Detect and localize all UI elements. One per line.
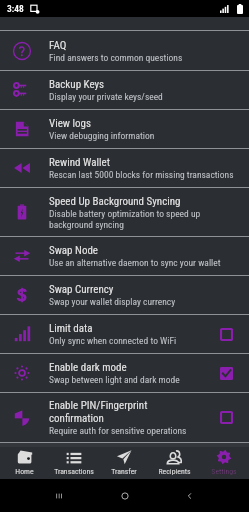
staticText: Find answers to common questions	[49, 52, 183, 63]
button[interactable]: Swap Currency	[0, 276, 249, 314]
staticText: Use an alternative daemon to sync your w…	[49, 257, 221, 268]
staticText: Backup Keys	[49, 78, 105, 91]
button[interactable]: Limit data	[0, 315, 249, 353]
staticText: Swap Currency	[49, 283, 114, 296]
staticText: Disable battery optimization to speed up…	[49, 208, 241, 230]
staticText: Transfer	[111, 467, 137, 476]
other: Back	[184, 490, 196, 502]
button[interactable]: Enable dark mode	[0, 354, 249, 392]
staticText: View debugging information	[49, 130, 155, 141]
staticText: Transactions	[54, 467, 94, 476]
staticText: View logs	[49, 117, 92, 130]
button[interactable]: Home	[0, 447, 49, 479]
button[interactable]: Rewind Wallet	[0, 149, 249, 187]
staticText: Swap your wallet display currency	[49, 296, 176, 307]
other: Transfer	[116, 449, 132, 465]
button[interactable]: Settings	[199, 447, 249, 479]
staticText: Home	[15, 467, 34, 476]
button[interactable]: Transfer	[99, 447, 149, 479]
button[interactable]: FAQ	[0, 31, 249, 70]
button[interactable]: View logs	[0, 110, 249, 148]
staticText: 3:48	[7, 3, 24, 14]
button[interactable]: Recipients	[149, 447, 199, 479]
staticText: Recipients	[158, 467, 191, 476]
staticText: Settings	[211, 467, 237, 476]
staticText: Enable PIN/Fingerprint confirmation	[49, 399, 203, 425]
other: Recipients	[166, 449, 182, 465]
staticText: Enable dark mode	[49, 361, 127, 374]
other: Home	[119, 490, 131, 502]
staticText: Swap Node	[49, 244, 99, 257]
other: Transactions	[66, 449, 82, 465]
staticText: Limit data	[49, 322, 93, 335]
other: Settings	[216, 449, 232, 465]
button[interactable]: Transactions	[49, 447, 99, 479]
staticText: Swap between light and dark mode	[49, 374, 180, 385]
staticText: FAQ	[49, 39, 67, 52]
button[interactable]: Enable PIN/Fingerprint confirmation	[0, 393, 249, 442]
button[interactable]: Backup Keys	[0, 71, 249, 109]
other: Home	[17, 449, 33, 465]
staticText: Require auth for sensitive operations	[49, 425, 187, 436]
staticText: Only sync when connected to WiFi	[49, 335, 177, 346]
button[interactable]: Speed Up Background Syncing	[0, 188, 249, 236]
button[interactable]: Swap Node	[0, 237, 249, 275]
staticText: Display your private keys/seed	[49, 91, 163, 102]
staticText: Speed Up Background Syncing	[49, 195, 181, 208]
staticText: Rescan last 5000 blocks for missing tran…	[49, 169, 234, 180]
other: Recent apps	[53, 490, 65, 502]
staticText: Rewind Wallet	[49, 156, 110, 169]
